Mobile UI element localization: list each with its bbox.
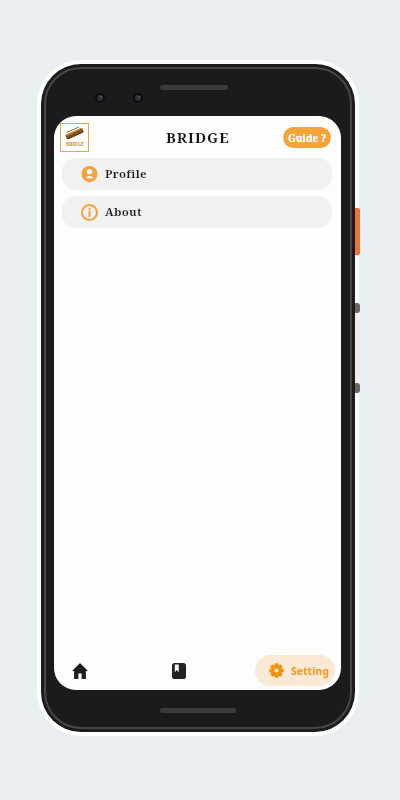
button[interactable]	[64, 656, 95, 686]
button[interactable]	[164, 656, 194, 686]
button[interactable]: Setting	[255, 655, 335, 686]
button[interactable]: BRIDGE	[60, 123, 89, 152]
staticText: About	[105, 204, 143, 220]
staticText: Setting	[291, 664, 329, 678]
staticText: Profile	[105, 166, 147, 182]
staticText: BRIDGE	[166, 127, 230, 147]
staticText: BRIDGE	[66, 141, 84, 147]
button[interactable]: About	[62, 196, 332, 228]
staticText: Guide ?	[288, 131, 327, 145]
button[interactable]: Profile	[62, 158, 332, 190]
button[interactable]: Guide ?	[283, 127, 331, 148]
